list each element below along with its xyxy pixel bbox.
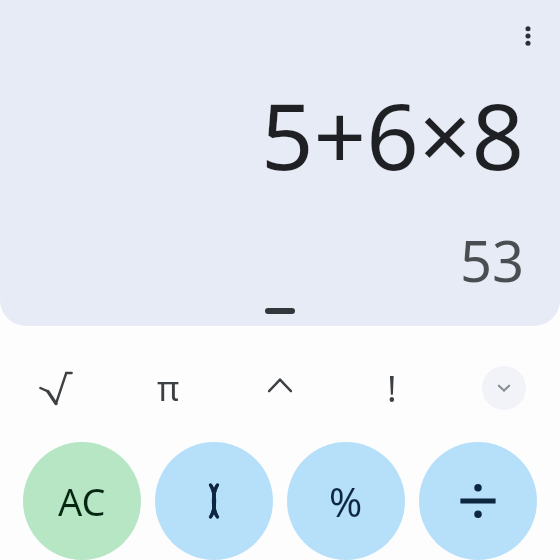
button[interactable]: Divide bbox=[419, 442, 537, 560]
button[interactable]: Parentheses bbox=[155, 442, 273, 560]
staticText: AC bbox=[58, 475, 106, 527]
button[interactable] bbox=[0, 360, 112, 416]
staticText: 5+6×8 bbox=[260, 72, 524, 197]
button[interactable]: All clear bbox=[23, 442, 141, 560]
staticText: % bbox=[329, 474, 363, 528]
button[interactable]: Expand bbox=[482, 366, 526, 410]
button[interactable]: Percent bbox=[287, 442, 405, 560]
staticText: π bbox=[157, 365, 180, 411]
button[interactable] bbox=[224, 360, 336, 416]
button[interactable]: More options bbox=[504, 12, 552, 60]
button[interactable]: Drag handle bbox=[252, 300, 308, 322]
staticText: ! bbox=[387, 364, 397, 413]
button[interactable]: ! bbox=[336, 360, 448, 416]
button[interactable]: π bbox=[112, 360, 224, 416]
staticText: 53 bbox=[459, 222, 524, 298]
